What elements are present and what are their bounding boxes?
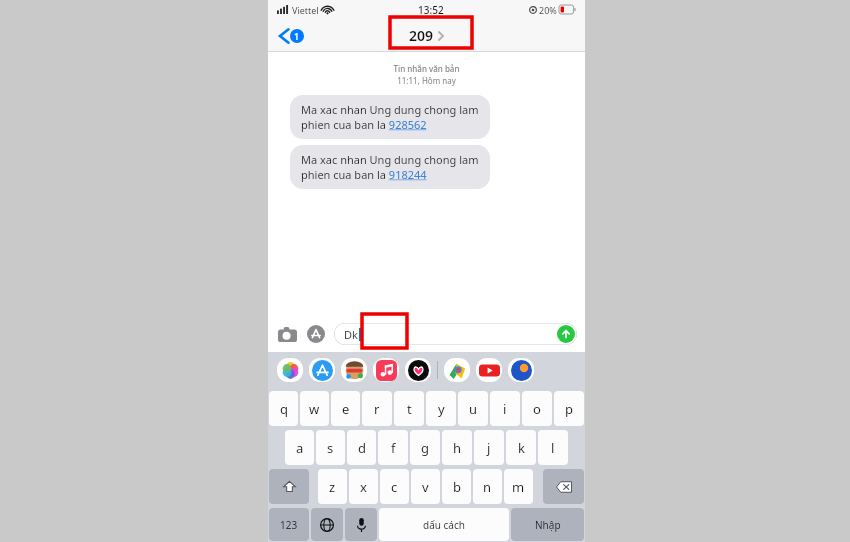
button[interactable]: e <box>331 391 360 426</box>
staticText: k <box>518 439 525 457</box>
button[interactable]: Maps <box>444 358 470 382</box>
button[interactable]: r <box>362 391 392 426</box>
button[interactable]: Ma xac nhan Ung dung chong lam phien cua… <box>290 95 490 139</box>
staticText: h <box>453 439 462 457</box>
button[interactable]: g <box>410 430 440 465</box>
button[interactable]: Send <box>557 325 575 343</box>
button[interactable]: k <box>506 430 536 465</box>
staticText: i <box>503 400 507 418</box>
button[interactable]: h <box>442 430 472 465</box>
button[interactable]: App Store <box>305 323 327 345</box>
staticText: Ma xac nhan Ung dung chong lam phien cua… <box>301 152 479 182</box>
staticText: r <box>374 400 380 418</box>
staticText: j <box>487 439 491 457</box>
button[interactable]: App <box>508 358 534 382</box>
button[interactable]: w <box>300 391 329 426</box>
button[interactable]: Fitness <box>405 358 431 382</box>
button[interactable]: t <box>394 391 424 426</box>
button[interactable]: p <box>554 391 584 426</box>
staticText: Ma xac nhan Ung dung chong lam phien cua… <box>301 102 479 132</box>
button[interactable]: x <box>349 469 378 504</box>
button[interactable]: App Store <box>309 358 335 382</box>
staticText: dấu cách <box>423 518 465 532</box>
button[interactable]: Change keyboard <box>311 508 343 541</box>
staticText: f <box>391 439 396 457</box>
button[interactable]: b <box>442 469 471 504</box>
button[interactable]: j <box>474 430 504 465</box>
button[interactable]: o <box>522 391 552 426</box>
staticText: g <box>421 439 429 457</box>
staticText: o <box>533 400 541 418</box>
staticText: 11:11, Hôm nay <box>268 75 585 86</box>
staticText: v <box>422 478 429 496</box>
staticText: t <box>407 400 412 418</box>
button[interactable]: l <box>538 430 568 465</box>
staticText: 1 <box>294 30 300 42</box>
button[interactable]: s <box>316 430 345 465</box>
button[interactable]: v <box>411 469 440 504</box>
staticText: s <box>327 439 334 457</box>
staticText: d <box>358 439 366 457</box>
staticText: Dk <box>344 327 358 342</box>
staticText: q <box>280 400 288 418</box>
staticText: x <box>360 478 367 496</box>
button[interactable]: dấu cách <box>379 508 509 541</box>
button[interactable]: z <box>318 469 347 504</box>
button[interactable]: a <box>285 430 314 465</box>
button[interactable]: u <box>458 391 488 426</box>
staticText: Viettel <box>292 4 319 16</box>
staticText: w <box>309 400 320 418</box>
button[interactable]: Dictate <box>345 508 377 541</box>
staticText: c <box>391 478 398 496</box>
button[interactable]: Camera <box>276 323 298 345</box>
button[interactable]: Ma xac nhan Ung dung chong lam phien cua… <box>290 145 490 189</box>
staticText: Nhập <box>535 518 561 532</box>
button[interactable]: f <box>378 430 408 465</box>
staticText: z <box>329 478 336 496</box>
button[interactable]: Memoji <box>341 358 367 382</box>
button[interactable]: Shift <box>269 469 309 504</box>
button[interactable]: m <box>504 469 533 504</box>
button[interactable]: Nhập <box>511 508 584 541</box>
staticText: Tin nhắn văn bản <box>268 63 585 74</box>
button[interactable]: 123 <box>269 508 309 541</box>
button[interactable]: i <box>490 391 520 426</box>
staticText: 209 <box>409 26 434 45</box>
button[interactable]: Music <box>373 358 399 382</box>
staticText: y <box>438 400 445 418</box>
staticText: 123 <box>280 518 298 532</box>
staticText: m <box>512 478 525 496</box>
staticText: p <box>565 400 573 418</box>
staticText: e <box>342 400 350 418</box>
button[interactable]: n <box>473 469 502 504</box>
button[interactable]: 209 <box>403 23 450 48</box>
button[interactable]: q <box>269 391 298 426</box>
staticText: n <box>483 478 492 496</box>
button[interactable]: y <box>426 391 456 426</box>
staticText: 20% <box>539 4 557 16</box>
staticText: b <box>453 478 461 496</box>
staticText: l <box>551 439 555 457</box>
button[interactable]: YouTube <box>476 358 502 382</box>
button[interactable]: Dk <box>334 323 577 345</box>
button[interactable]: Backspace <box>543 469 584 504</box>
button[interactable]: Back, 1 unread <box>276 25 307 47</box>
button[interactable]: d <box>347 430 376 465</box>
button[interactable]: Photos <box>277 358 303 382</box>
staticText: a <box>296 439 304 457</box>
staticText: 13:52 <box>418 3 444 17</box>
button[interactable]: c <box>380 469 409 504</box>
staticText: u <box>469 400 478 418</box>
